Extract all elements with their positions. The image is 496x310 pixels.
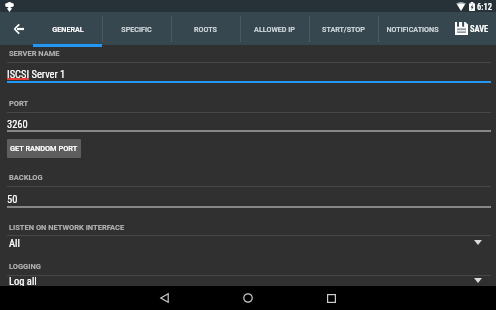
staticText: SAVE <box>470 24 489 34</box>
button[interactable]: Recent apps <box>319 286 343 310</box>
other: Downloading <box>5 2 14 12</box>
button[interactable]: Navigate up <box>2 12 35 45</box>
staticText: 3260 <box>7 118 28 130</box>
staticText: 50 <box>7 193 18 205</box>
other: Wi-Fi <box>456 2 466 11</box>
staticText: Log all <box>9 275 37 287</box>
staticText: All <box>9 237 20 249</box>
other: Open dropdown <box>474 240 482 245</box>
staticText: ALLOWED IP <box>254 25 295 33</box>
button[interactable]: SAVE <box>448 12 496 45</box>
other: Open dropdown <box>474 278 482 283</box>
staticText: LOGGING <box>9 262 41 271</box>
staticText: LISTEN ON NETWORK INTERFACE <box>9 223 125 232</box>
staticText: SPECIFIC <box>121 25 152 33</box>
other: Battery charging <box>469 2 475 11</box>
button[interactable]: All <box>0 236 496 252</box>
button[interactable]: ROOTS <box>171 12 240 45</box>
staticText: NOTIFICATIONS <box>386 25 439 33</box>
button[interactable]: Home <box>236 286 260 310</box>
staticText: BACKLOG <box>9 173 43 182</box>
staticText: GET RANDOM PORT <box>10 144 78 153</box>
button[interactable]: Back <box>152 286 176 310</box>
button[interactable]: START/STOP <box>309 12 378 45</box>
button[interactable]: GET RANDOM PORT <box>7 139 81 158</box>
button[interactable]: GENERAL <box>33 12 102 45</box>
button[interactable]: Log all <box>0 274 496 290</box>
staticText: 6:12 <box>477 2 492 12</box>
button[interactable]: NOTIFICATIONS <box>378 12 447 45</box>
staticText: START/STOP <box>322 25 365 33</box>
staticText: GENERAL <box>52 25 84 33</box>
staticText: PORT <box>9 99 29 108</box>
staticText: ISCSI Server 1 <box>7 68 66 80</box>
staticText: ROOTS <box>194 25 217 33</box>
staticText: SERVER NAME <box>9 49 60 58</box>
button[interactable]: ALLOWED IP <box>240 12 309 45</box>
button[interactable]: SPECIFIC <box>102 12 171 45</box>
